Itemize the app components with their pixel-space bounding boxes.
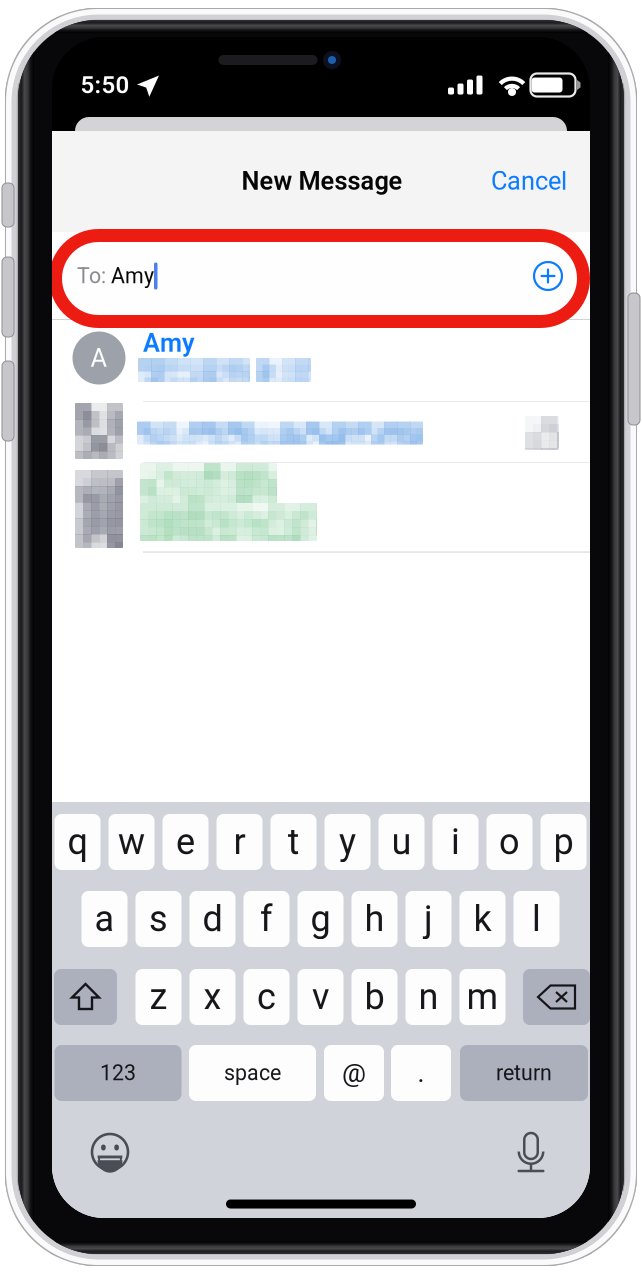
button[interactable]: A: [52, 320, 590, 402]
staticText: p: [553, 821, 573, 862]
staticText: Amy: [106, 264, 154, 288]
staticText: s: [149, 898, 168, 939]
button[interactable]: t: [270, 814, 316, 870]
staticText: w: [118, 821, 145, 862]
staticText: y: [339, 821, 356, 862]
button[interactable]: d: [189, 891, 235, 947]
staticText: .: [417, 1058, 424, 1088]
button[interactable]: n: [405, 969, 451, 1025]
button[interactable]: x: [189, 969, 235, 1025]
staticText: space: [224, 1061, 281, 1085]
button[interactable]: .: [391, 1045, 451, 1101]
button[interactable]: j: [405, 891, 451, 947]
button[interactable]: u: [378, 814, 424, 870]
button[interactable]: w: [108, 814, 154, 870]
button[interactable]: c: [243, 969, 289, 1025]
button[interactable]: h: [351, 891, 397, 947]
staticText: e: [176, 821, 195, 862]
button[interactable]: s: [135, 891, 181, 947]
staticText: Amy: [143, 328, 195, 357]
button[interactable]: k: [459, 891, 505, 947]
button[interactable]: p: [540, 814, 586, 870]
button[interactable]: g: [297, 891, 343, 947]
staticText: k: [473, 898, 491, 939]
button[interactable]: Dictate: [506, 1127, 556, 1177]
staticText: f: [260, 898, 273, 939]
button[interactable]: e: [162, 814, 208, 870]
button[interactable]: z: [135, 969, 181, 1025]
staticText: 5:50: [80, 71, 129, 99]
staticText: j: [424, 898, 433, 939]
staticText: d: [202, 898, 222, 939]
staticText: b: [364, 976, 384, 1017]
button[interactable]: v: [297, 969, 343, 1025]
button[interactable]: q: [54, 814, 100, 870]
button[interactable]: i: [432, 814, 478, 870]
button[interactable]: [52, 463, 590, 552]
staticText: z: [149, 976, 167, 1017]
button[interactable]: [52, 402, 590, 463]
button[interactable]: @: [324, 1045, 384, 1101]
staticText: return: [496, 1061, 552, 1085]
staticText: v: [312, 976, 329, 1017]
staticText: To:: [77, 264, 106, 288]
staticText: o: [499, 821, 520, 862]
button[interactable]: a: [81, 891, 127, 947]
button[interactable]: Delete: [523, 969, 590, 1025]
button[interactable]: r: [216, 814, 262, 870]
button[interactable]: Add contact: [523, 251, 573, 301]
staticText: i: [451, 821, 460, 862]
staticText: h: [364, 898, 384, 939]
button[interactable]: space: [189, 1045, 316, 1101]
staticText: r: [233, 821, 245, 862]
button[interactable]: Emoji keyboard: [85, 1127, 135, 1177]
button[interactable]: f: [243, 891, 289, 947]
button[interactable]: m: [459, 969, 505, 1025]
button[interactable]: b: [351, 969, 397, 1025]
staticText: a: [94, 898, 114, 939]
button[interactable]: y: [324, 814, 370, 870]
button[interactable]: o: [486, 814, 532, 870]
staticText: l: [532, 898, 541, 939]
staticText: x: [203, 976, 221, 1017]
button[interactable]: Cancel: [437, 149, 590, 213]
staticText: n: [418, 976, 438, 1017]
button[interactable]: 123: [54, 1045, 181, 1101]
staticText: New Message: [241, 166, 402, 195]
staticText: @: [342, 1058, 366, 1088]
button[interactable]: Shift: [54, 969, 117, 1025]
staticText: q: [67, 821, 87, 862]
staticText: c: [257, 976, 276, 1017]
staticText: Cancel: [491, 166, 567, 195]
staticText: t: [287, 821, 299, 862]
staticText: g: [310, 898, 330, 939]
staticText: 123: [100, 1061, 136, 1085]
staticText: A: [90, 343, 107, 372]
staticText: m: [466, 976, 498, 1017]
button[interactable]: return: [460, 1045, 588, 1101]
staticText: u: [391, 821, 411, 862]
button[interactable]: l: [513, 891, 559, 947]
